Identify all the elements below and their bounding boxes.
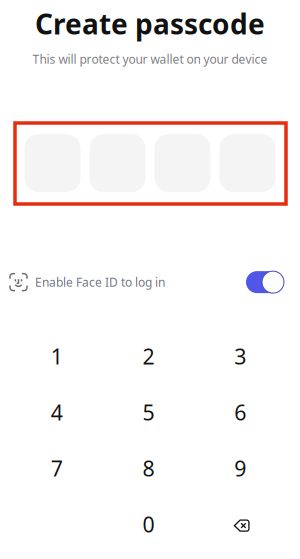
- staticText: 0: [142, 510, 154, 538]
- staticText: 9: [234, 454, 246, 482]
- staticText: 8: [142, 454, 154, 482]
- staticText: 3: [234, 342, 246, 370]
- button[interactable]: 6: [194, 393, 286, 431]
- button[interactable]: 5: [103, 393, 194, 431]
- button[interactable]: 4: [11, 393, 103, 431]
- button[interactable]: 8: [103, 449, 194, 487]
- button[interactable]: 3: [194, 337, 286, 375]
- button[interactable]: 2: [103, 337, 194, 375]
- button[interactable]: 7: [11, 449, 103, 487]
- button[interactable]: Enable Face ID: [246, 271, 284, 293]
- button[interactable]: 1: [11, 337, 103, 375]
- button[interactable]: Passcode: [24, 134, 275, 192]
- staticText: 5: [142, 398, 154, 426]
- staticText: 1: [51, 342, 63, 370]
- staticText: 7: [51, 454, 63, 482]
- staticText: 2: [142, 342, 154, 370]
- staticText: Create passcode: [35, 5, 265, 42]
- button[interactable]: 0: [103, 505, 194, 543]
- staticText: 6: [234, 398, 246, 426]
- staticText: 4: [51, 398, 63, 426]
- button[interactable]: 9: [194, 449, 286, 487]
- button[interactable]: Delete: [194, 505, 286, 543]
- staticText: Enable Face ID to log in: [35, 274, 165, 290]
- staticText: This will protect your wallet on your de…: [32, 51, 267, 67]
